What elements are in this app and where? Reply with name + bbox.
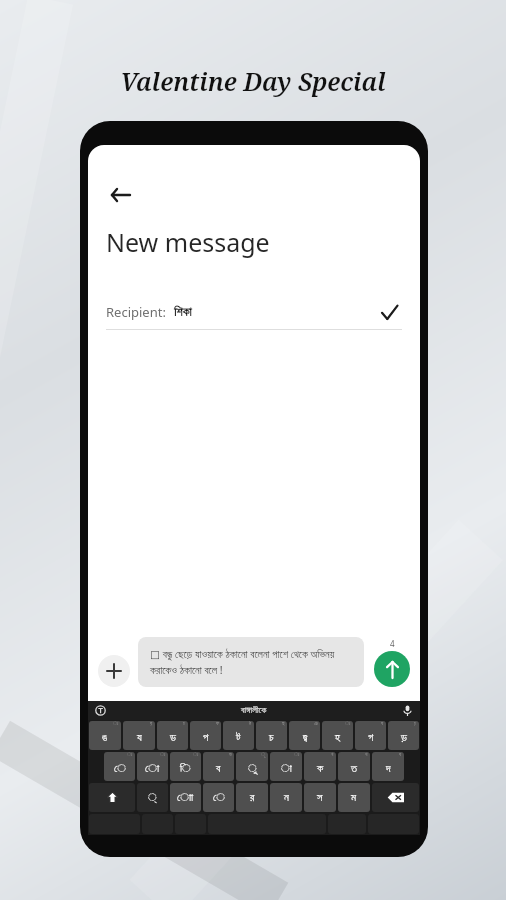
staticText: চ (269, 732, 274, 743)
staticText: োা (177, 792, 194, 803)
staticText: Valentine Day Special (120, 64, 386, 98)
staticText: ূ (261, 752, 266, 757)
button[interactable]: Shift (89, 783, 135, 812)
staticText: ঘ (381, 721, 384, 726)
button[interactable]: ঢ (157, 721, 188, 750)
staticText: ঃ (193, 752, 199, 757)
staticText: ছ (282, 721, 285, 726)
button[interactable]: স (304, 783, 336, 812)
button[interactable]: োা (170, 783, 201, 812)
staticText: ত (351, 763, 357, 774)
button[interactable]: ছ (256, 721, 287, 750)
button[interactable]: ঃ (322, 721, 353, 750)
staticText: ি (180, 763, 191, 774)
staticText: □ বন্ধু ছেড়ে যাওয়াকে ঠকানো বলেনা পাশে থ… (150, 647, 352, 677)
staticText: ো (145, 763, 160, 774)
staticText: ম (351, 792, 357, 803)
staticText: স (317, 792, 323, 803)
staticText: ব (216, 763, 221, 774)
staticText: ড় (401, 732, 407, 743)
button[interactable]: ঘ (355, 721, 386, 750)
staticText: প (203, 732, 209, 743)
button[interactable]: Send (374, 651, 410, 687)
staticText: Recipient: (106, 303, 166, 321)
staticText: থ (365, 752, 368, 757)
staticText: ে (114, 763, 126, 774)
button[interactable]: খ (304, 752, 336, 781)
staticText: ধ (399, 752, 402, 757)
staticText: া (281, 763, 292, 774)
staticText: য (137, 732, 142, 743)
button[interactable]: বাঙ্গালীকে (241, 706, 267, 715)
staticText: New message (106, 225, 270, 259)
staticText: ঃ (113, 721, 119, 726)
button[interactable]: ঃ (170, 752, 201, 781)
button[interactable]: ধ (372, 752, 404, 781)
staticText: দ (386, 763, 391, 774)
staticText: হ (335, 732, 340, 743)
staticText: গ (368, 732, 374, 743)
staticText: ঃ (127, 752, 133, 757)
staticText: ঢ় (414, 721, 417, 726)
button[interactable]: র (236, 783, 268, 812)
staticText: ন (284, 792, 289, 803)
staticText: ক (317, 763, 324, 774)
staticText: ঃ (160, 752, 166, 757)
button[interactable]: Voice input (401, 704, 414, 717)
staticText: ঃ (294, 752, 300, 757)
button[interactable]: Add attachment (98, 655, 130, 687)
staticText: ভ (229, 752, 232, 757)
other: Confirm recipient (376, 299, 402, 325)
button[interactable]: Recipient: (106, 295, 402, 329)
staticText: ড (170, 732, 176, 743)
staticText: ঞ (314, 721, 318, 726)
staticText: ্ (148, 792, 157, 803)
button[interactable]: Back (100, 175, 140, 215)
button[interactable]: থ (338, 752, 370, 781)
button[interactable]: ঢ় (388, 721, 419, 750)
button[interactable]: ঠ (223, 721, 254, 750)
button[interactable]: Backspace (372, 783, 419, 812)
staticText: খ (331, 752, 334, 757)
button[interactable]: ঃ (104, 752, 135, 781)
button[interactable]: ঞ (289, 721, 320, 750)
button[interactable]: ন (270, 783, 302, 812)
button[interactable]: ঃ (89, 721, 121, 750)
button[interactable]: □ বন্ধু ছেড়ে যাওয়াকে ঠকানো বলেনা পাশে থ… (138, 637, 364, 687)
staticText: য় (150, 721, 153, 726)
button[interactable]: Keyboard options (94, 704, 107, 717)
staticText: ঢ (183, 721, 186, 726)
button[interactable]: ্ (137, 783, 168, 812)
staticText: ে (213, 792, 225, 803)
button[interactable]: ূ (236, 752, 268, 781)
staticText: ঙ (102, 732, 108, 743)
button[interactable]: ঃ (137, 752, 168, 781)
button[interactable]: ফ (190, 721, 221, 750)
staticText: ু (248, 763, 257, 774)
button[interactable]: ম (338, 783, 370, 812)
staticText: জ্ব (303, 732, 307, 743)
staticText: র (250, 792, 255, 803)
button[interactable]: ে (203, 783, 234, 812)
staticText: ট (236, 732, 241, 743)
staticText: শিকা (174, 306, 192, 318)
button[interactable]: য় (123, 721, 155, 750)
staticText: ঠ (249, 721, 252, 726)
button[interactable]: ঃ (270, 752, 302, 781)
staticText: ঃ (345, 721, 351, 726)
staticText: ফ (216, 721, 219, 726)
button[interactable]: ভ (203, 752, 234, 781)
staticText: 4 (390, 638, 395, 649)
